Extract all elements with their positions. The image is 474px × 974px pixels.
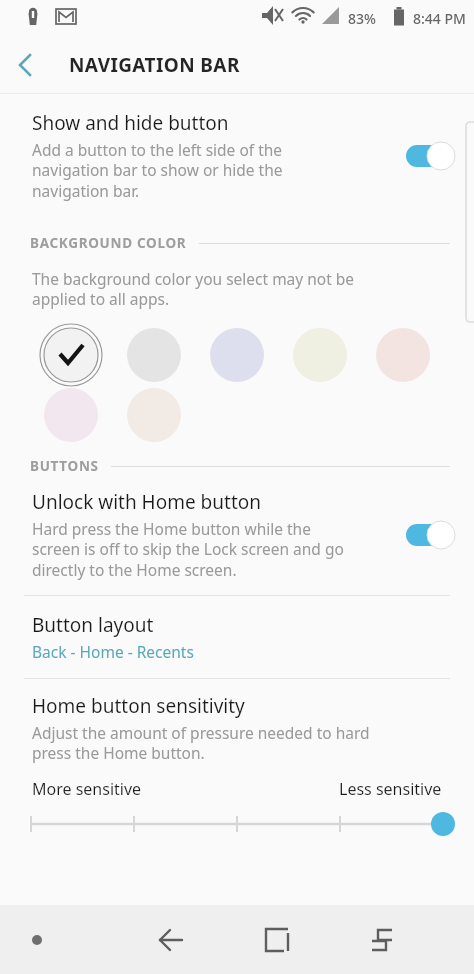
button[interactable]: Button layout	[0, 596, 474, 678]
button[interactable]: Recents	[329, 905, 434, 974]
staticText: Adjust the amount of pressure needed to …	[32, 722, 370, 764]
staticText: Add a button to the left side of the nav…	[32, 139, 283, 202]
button[interactable]	[402, 139, 458, 173]
button[interactable]: Show and hide button	[0, 94, 474, 216]
button[interactable]	[402, 518, 458, 552]
button[interactable]: Color 5	[43, 387, 99, 443]
button[interactable]: Color 0	[43, 327, 99, 383]
staticText: Back - Home - Recents	[32, 641, 194, 662]
button[interactable]: Back	[0, 41, 48, 89]
staticText: 83%	[348, 9, 376, 28]
staticText: Home button sensitivity	[32, 693, 245, 719]
button[interactable]: Color 6	[126, 387, 182, 443]
staticText: More sensitive	[32, 778, 142, 800]
button[interactable]: Color 2	[209, 327, 265, 383]
button[interactable]: Color 4	[375, 327, 431, 383]
button[interactable]: Sensitivity slider	[0, 810, 474, 840]
staticText: BACKGROUND COLOR	[30, 234, 187, 252]
staticText: Button layout	[32, 612, 154, 638]
button[interactable]: Show and hide navigation bar	[0, 905, 118, 974]
staticText: BUTTONS	[30, 457, 99, 475]
staticText: Unlock with Home button	[32, 489, 261, 515]
staticText: The background color you select may not …	[32, 268, 355, 310]
staticText: 8:44 PM	[413, 9, 466, 28]
staticText: Hard press the Home button while the scr…	[32, 518, 344, 581]
staticText: NAVIGATION BAR	[69, 52, 240, 78]
button[interactable]: Color 3	[292, 327, 348, 383]
button[interactable]: Color 1	[126, 327, 182, 383]
staticText: Less sensitive	[339, 778, 442, 800]
staticText: Show and hide button	[32, 110, 229, 136]
button[interactable]: Home	[224, 905, 329, 974]
button[interactable]: Unlock with Home button	[0, 475, 474, 595]
button[interactable]: Back	[118, 905, 224, 974]
